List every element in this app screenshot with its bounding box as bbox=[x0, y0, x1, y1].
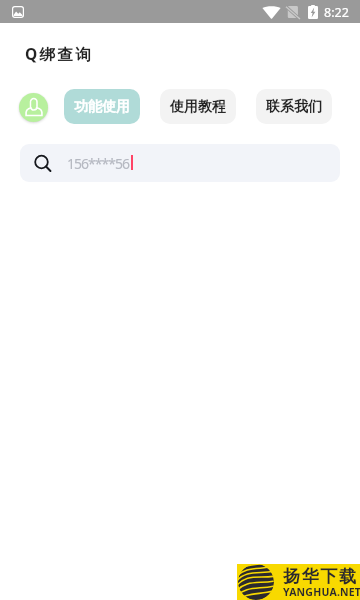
staticText: YANGHUA.NET bbox=[283, 585, 360, 599]
staticText: 功能使用 bbox=[74, 98, 130, 116]
staticText: 扬华下载 bbox=[283, 566, 358, 587]
staticText: 联系我们 bbox=[266, 98, 322, 116]
staticText: Q绑查询 bbox=[25, 43, 94, 64]
button[interactable]: 联系我们 bbox=[256, 89, 332, 124]
staticText: 156****56 bbox=[67, 154, 129, 173]
button[interactable]: My account bbox=[19, 93, 48, 122]
button[interactable]: 功能使用 bbox=[64, 89, 140, 124]
button[interactable]: 使用教程 bbox=[160, 89, 236, 124]
staticText: 8:22 bbox=[324, 4, 349, 21]
button[interactable]: 156****56 bbox=[20, 144, 340, 182]
staticText: 使用教程 bbox=[170, 98, 226, 116]
